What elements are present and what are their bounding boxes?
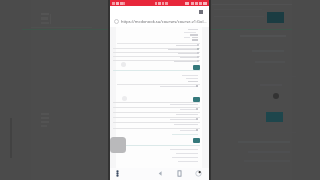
button[interactable]: Expand — [197, 60, 199, 62]
button[interactable]: Expand — [196, 108, 198, 110]
button[interactable]: Back — [156, 169, 165, 178]
button[interactable]: Expand — [197, 44, 199, 46]
button[interactable]: Expand — [197, 56, 199, 58]
button[interactable]: Expand — [196, 85, 198, 87]
button[interactable]: More options — [113, 169, 122, 178]
button[interactable]: Start — [193, 65, 200, 70]
button[interactable]: Expand — [197, 48, 199, 50]
button[interactable]: Home — [175, 169, 184, 178]
button[interactable]: Expand — [197, 52, 199, 54]
button[interactable]: https://mcdonook.su/courses/course-v1:Go… — [114, 19, 209, 24]
button[interactable]: Start — [193, 97, 200, 102]
button[interactable]: Expand — [196, 129, 198, 131]
button[interactable]: Recent apps — [194, 169, 203, 178]
button[interactable]: Start — [193, 138, 200, 143]
staticText: https://mcdonook.su/courses/course-v1:Go… — [121, 19, 207, 24]
button[interactable]: Expand — [196, 118, 198, 120]
